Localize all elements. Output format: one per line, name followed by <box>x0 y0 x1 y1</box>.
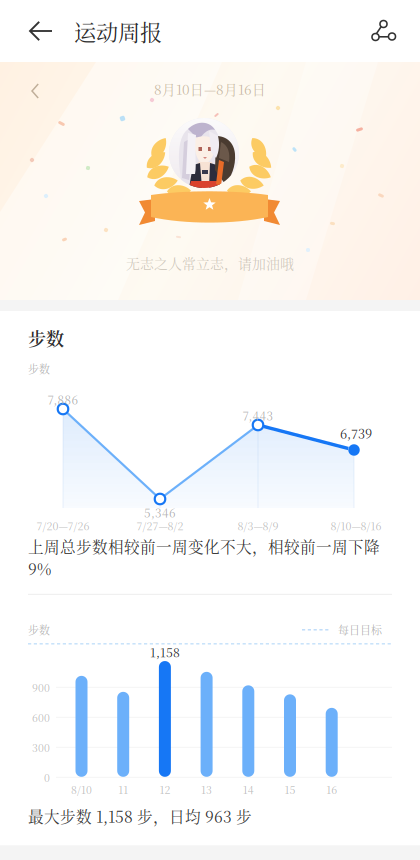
staticText: 7,443 <box>242 407 273 424</box>
staticText: 11 <box>118 782 128 797</box>
staticText: 900 <box>32 680 50 695</box>
button[interactable]: Back <box>0 0 74 62</box>
staticText: 8月10日—8月16日 <box>154 79 266 98</box>
staticText: 8/10—8/16 <box>330 518 381 533</box>
staticText: 8/10 <box>71 782 92 797</box>
staticText: 8/3—8/9 <box>237 518 278 533</box>
button[interactable]: Previous week <box>0 75 54 107</box>
staticText: 13 <box>201 782 212 797</box>
staticText: 每日目标 <box>338 622 382 637</box>
staticText: 14 <box>243 782 254 797</box>
staticText: 16 <box>326 782 337 797</box>
staticText: 600 <box>32 710 50 725</box>
staticText: 1,158 <box>150 643 180 661</box>
staticText: 12 <box>159 782 170 797</box>
staticText: 7/20—7/26 <box>36 518 89 533</box>
staticText: 0 <box>44 770 50 785</box>
staticText: 运动周报 <box>74 15 162 47</box>
staticText: 7,886 <box>47 391 78 408</box>
staticText: 15 <box>284 782 295 797</box>
staticText: 无志之人常立志，请加油哦 <box>126 253 294 273</box>
staticText: 步数 <box>28 325 64 351</box>
staticText: 300 <box>32 740 50 755</box>
staticText: 6,739 <box>340 424 372 442</box>
staticText: 步数 <box>28 361 50 377</box>
staticText: 7/27—8/2 <box>136 518 183 533</box>
staticText: 上周总步数相较前一周变化不大，相较前一周下降9% <box>28 535 380 580</box>
staticText: 5,346 <box>144 504 176 521</box>
button[interactable]: Share <box>356 0 420 62</box>
staticText: 步数 <box>28 622 50 637</box>
staticText: 最大步数 1,158 步，日均 963 步 <box>28 805 252 827</box>
